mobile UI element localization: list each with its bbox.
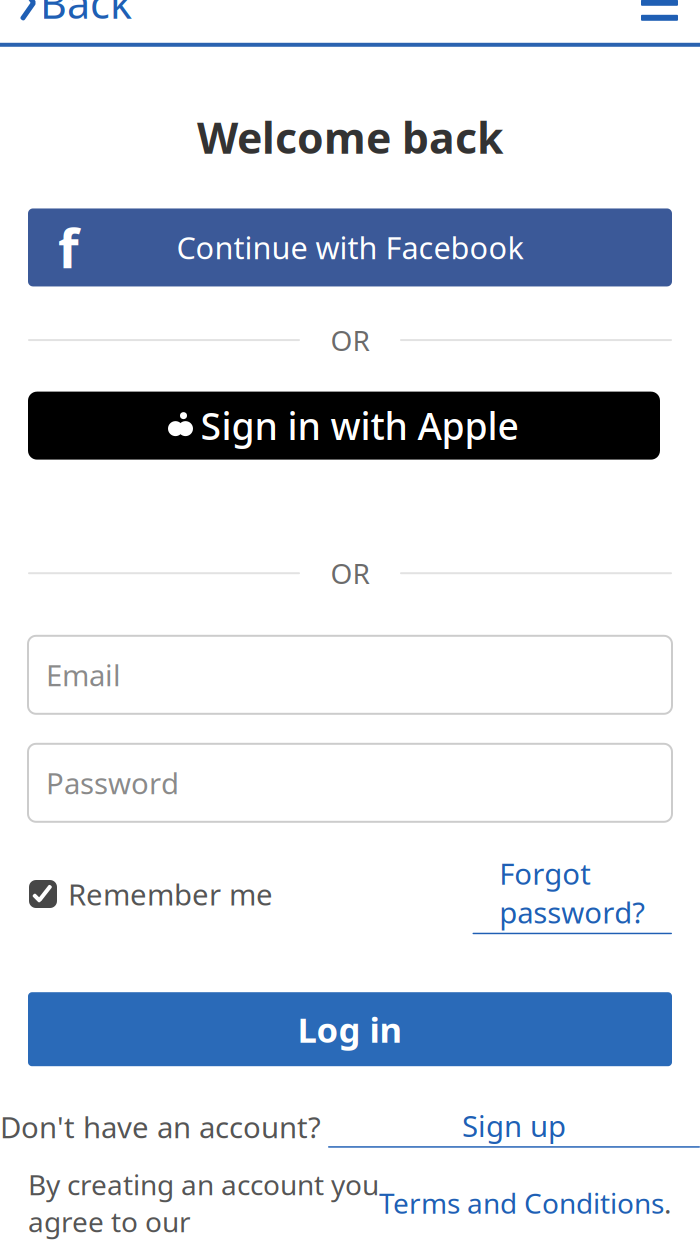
button[interactable]: Back	[0, 0, 132, 40]
staticText: Password	[46, 763, 179, 802]
staticText: .	[664, 1184, 672, 1221]
staticText: Back	[40, 0, 132, 30]
staticText: OR	[330, 555, 369, 592]
button[interactable]: Log in	[0, 992, 700, 1066]
button[interactable]: Terms and Conditions	[379, 1184, 664, 1221]
button[interactable]: Sign in with Apple	[0, 392, 700, 460]
staticText: Continue with Facebook	[176, 227, 523, 268]
staticText: Sign up	[462, 1106, 566, 1145]
staticText: Log in	[297, 1006, 402, 1052]
staticText: By creating an account you agree to our	[28, 1166, 379, 1240]
staticText: Terms and Conditions	[379, 1184, 664, 1221]
button[interactable]: Menu	[641, 0, 700, 33]
staticText: Welcome back	[197, 109, 503, 165]
button[interactable]: Remember me	[28, 874, 273, 913]
button[interactable]: Password	[28, 744, 672, 822]
staticText: Sign in with Apple	[200, 401, 518, 450]
staticText: Forgot password?	[499, 854, 645, 932]
staticText: Remember me	[68, 874, 273, 913]
staticText: OR	[330, 321, 369, 359]
button[interactable]: Email	[28, 636, 672, 714]
button[interactable]: Sign up	[328, 1106, 700, 1148]
staticText: Email	[46, 655, 121, 694]
staticText: Don't have an account?	[0, 1107, 321, 1146]
staticText: f	[58, 212, 79, 283]
button[interactable]: f	[0, 208, 700, 286]
button[interactable]: Forgot password?	[472, 854, 672, 934]
